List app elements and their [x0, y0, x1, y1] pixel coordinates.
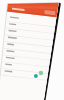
- button[interactable]: Phone app screen: [0, 0, 64, 100]
